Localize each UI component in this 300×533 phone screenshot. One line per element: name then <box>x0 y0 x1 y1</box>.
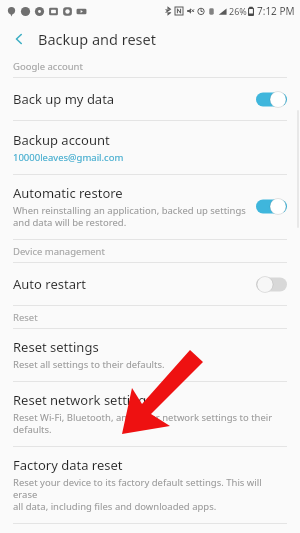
staticText: Backup account <box>13 131 110 149</box>
staticText: Google account <box>13 60 83 73</box>
button[interactable]: Back <box>0 22 38 55</box>
staticText: Reset settings <box>13 338 99 356</box>
button[interactable]: Automatic restore <box>0 175 300 239</box>
staticText: 7:12 PM <box>257 4 295 18</box>
staticText: Reset network settings <box>13 391 153 409</box>
button[interactable]: Reset settings <box>0 329 300 381</box>
staticText: 10000leaves@gmail.com <box>13 151 124 164</box>
button[interactable]: Backup account <box>0 121 300 174</box>
staticText: Auto restart <box>13 275 86 293</box>
staticText: Device management <box>13 245 105 258</box>
staticText: Reset Wi-Fi, Bluetooth, and other networ… <box>13 411 273 436</box>
staticText: Automatic restore <box>13 184 123 202</box>
staticText: Reset <box>13 311 38 324</box>
staticText: Back up my data <box>13 90 115 108</box>
staticText: Factory data reset <box>13 456 123 474</box>
staticText: Reset your device to its factory default… <box>13 476 287 513</box>
button[interactable]: Factory data reset <box>0 447 300 523</box>
staticText: 26% <box>229 5 247 17</box>
button[interactable]: Reset network settings <box>0 382 300 446</box>
button[interactable]: Auto restart <box>0 263 300 305</box>
button[interactable]: Back up my data <box>0 78 300 120</box>
staticText: Reset all settings to their defaults. <box>13 358 165 371</box>
staticText: When reinstalling an application, backed… <box>13 204 246 229</box>
staticText: Backup and reset <box>38 29 156 49</box>
